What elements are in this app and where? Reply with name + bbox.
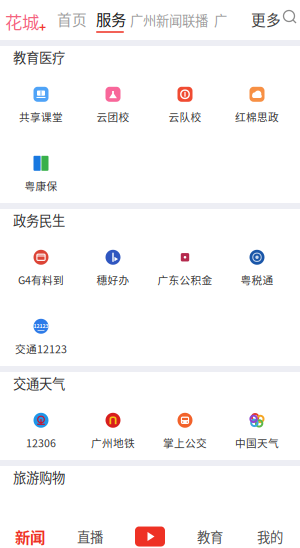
staticText: 花城 [5,9,39,34]
button[interactable]: 更多 [251,10,281,28]
button[interactable]: 教育 [180,525,240,548]
button[interactable]: G4有料到 [5,250,77,287]
button[interactable]: 我的 [240,525,300,548]
button[interactable]: 云队校 [149,87,221,124]
staticText: + [39,18,46,35]
staticText: 教育医疗 [13,47,65,67]
button[interactable]: 中国天气 [221,413,293,450]
staticText: 共享课堂 [19,109,63,124]
staticText: 中国天气 [235,435,279,450]
button[interactable]: 粤康保 [5,156,77,193]
button[interactable]: 广 [214,11,228,29]
staticText: 教育 [197,527,223,546]
staticText: 交通天气 [13,373,65,393]
button[interactable]: 共享课堂 [5,87,77,124]
staticText: G4有料到 [18,272,64,287]
staticText: 广州新闻联播 [130,10,208,30]
button[interactable]: 首页 [57,10,89,28]
staticText: 旅游购物 [13,467,65,487]
button[interactable]: 12306 [5,413,77,450]
button[interactable]: Video [120,525,180,548]
button[interactable]: 粤税通 [221,250,293,287]
staticText: 广东公积金 [157,272,212,287]
staticText: 红棉思政 [235,109,279,124]
staticText: 粤康保 [24,178,57,193]
staticText: 12306 [26,435,56,450]
button[interactable]: 12123 [5,319,77,356]
button[interactable]: 服务 [96,10,127,34]
button[interactable]: 穗好办 [77,250,149,287]
staticText: 云团校 [96,109,129,124]
staticText: 新闻 [15,525,45,548]
button[interactable]: 云团校 [77,87,149,124]
staticText: 掌上公交 [163,435,207,450]
staticText: 广 [214,10,227,30]
button[interactable]: 掌上公交 [149,413,221,450]
staticText: 穗好办 [96,272,129,287]
staticText: 更多 [251,8,281,30]
staticText: 粤税通 [240,272,273,287]
staticText: 交通12123 [15,341,67,356]
staticText: 政务民生 [13,210,65,230]
staticText: 12123 [33,322,48,330]
button[interactable]: 新闻 [0,525,60,548]
staticText: 服务 [96,7,126,30]
button[interactable]: 广州新闻联播 [130,11,210,29]
button[interactable]: Search [283,10,297,24]
staticText: 首页 [57,8,87,30]
staticText: 直播 [77,527,103,546]
button[interactable]: 广东公积金 [149,250,221,287]
staticText: 云队校 [168,109,201,124]
staticText: 我的 [257,527,283,546]
button[interactable]: 广州地铁 [77,413,149,450]
button[interactable]: 红棉思政 [221,87,293,124]
staticText: 广州地铁 [91,435,135,450]
button[interactable]: 直播 [60,525,120,548]
